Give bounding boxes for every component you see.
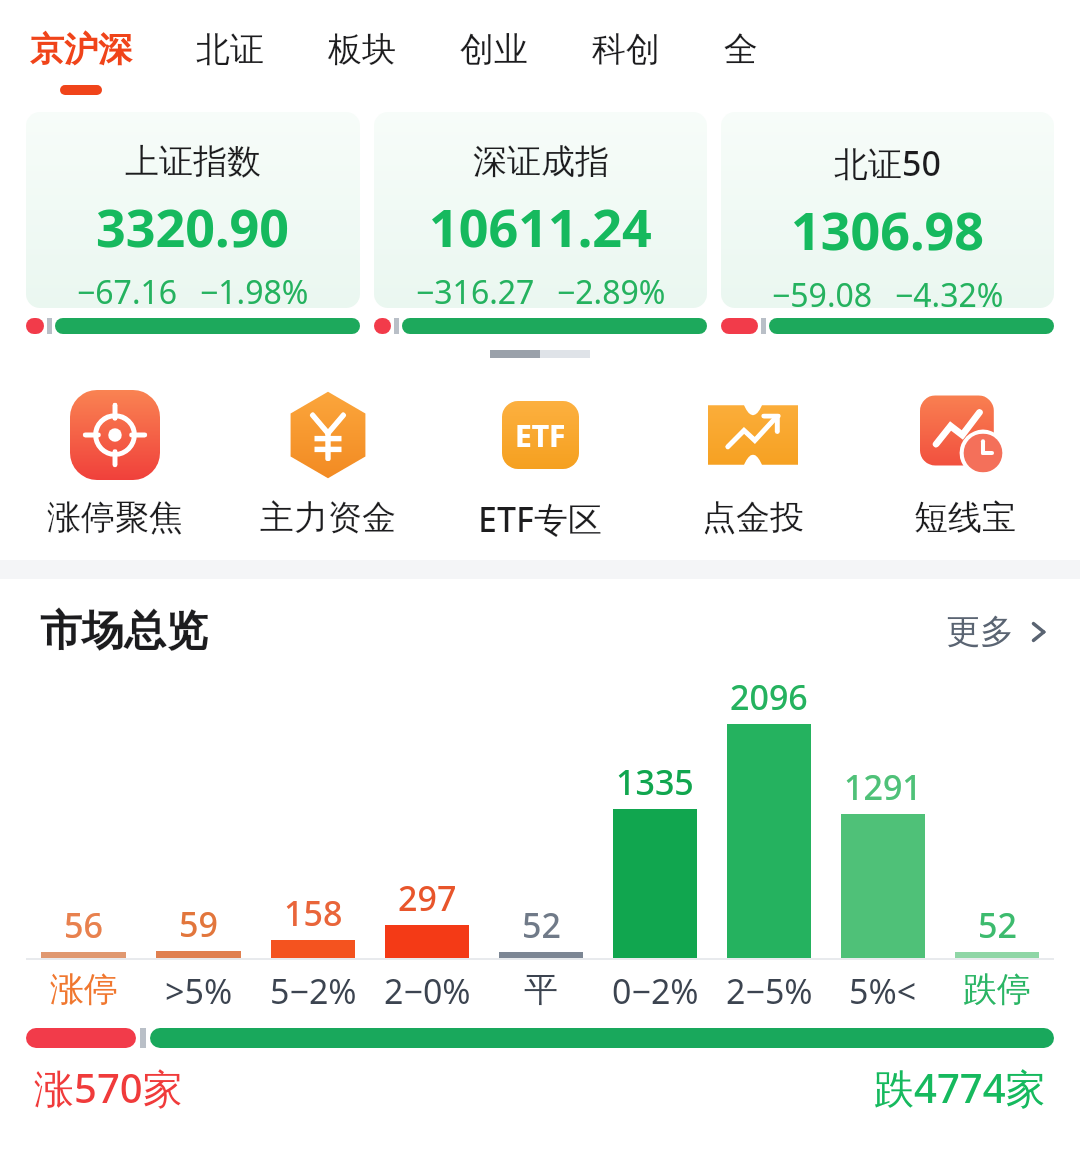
other: 涨停聚焦 (70, 390, 160, 480)
button[interactable]: 深证成指 (374, 112, 707, 334)
staticText: 2−0% (384, 968, 471, 1014)
staticText: 5%< (849, 968, 917, 1014)
staticText: 市场总览 (40, 605, 208, 658)
other: ETF专区 (495, 390, 585, 480)
staticText: 深证成指 (473, 140, 609, 183)
staticText: 0−2% (612, 968, 699, 1014)
button[interactable]: 主力资金 (233, 390, 423, 539)
button[interactable]: 全 (724, 28, 758, 71)
staticText: 297 (398, 875, 457, 921)
other: 主力资金 (283, 390, 373, 480)
button[interactable]: 京沪深 (30, 28, 132, 95)
button[interactable]: 板块 (328, 28, 396, 71)
button[interactable]: 2096 (712, 674, 826, 958)
staticText: −4.32% (895, 273, 1004, 308)
staticText: 科创 (592, 28, 660, 71)
button[interactable]: 52 (940, 902, 1054, 958)
button[interactable]: 短线宝 (870, 390, 1060, 539)
button[interactable]: 上证指数 (26, 112, 360, 334)
button[interactable]: 1335 (598, 759, 712, 958)
button[interactable]: 创业 (460, 28, 528, 71)
staticText: 2096 (730, 674, 808, 720)
staticText: 京沪深 (30, 28, 132, 71)
button[interactable]: 1291 (826, 764, 940, 958)
staticText: 跌4774家 (874, 1060, 1046, 1115)
staticText: 2−5% (726, 968, 813, 1014)
button[interactable]: ETF专区 (445, 390, 635, 542)
button[interactable]: 更多 (946, 610, 1050, 653)
staticText: 全 (724, 28, 758, 71)
staticText: >5% (165, 968, 233, 1014)
staticText: 北证50 (834, 140, 941, 186)
staticText: 56 (64, 902, 103, 948)
button[interactable]: 158 (256, 890, 370, 958)
staticText: 更多 (946, 610, 1014, 653)
staticText: 59 (179, 901, 218, 947)
staticText: −2.89% (557, 270, 666, 308)
staticText: −316.27 (416, 270, 535, 308)
staticText: 主力资金 (260, 496, 396, 539)
staticText: 1335 (616, 759, 694, 805)
staticText: 创业 (460, 28, 528, 71)
staticText: 1291 (844, 764, 922, 810)
other: 短线宝 (920, 390, 1010, 480)
staticText: 上证指数 (125, 140, 261, 183)
staticText: 板块 (328, 28, 396, 71)
staticText: 涨停 (50, 968, 118, 1011)
staticText: 点金投 (702, 496, 804, 539)
staticText: −59.08 (772, 273, 873, 308)
button[interactable]: 56 (26, 902, 141, 958)
staticText: 10611.24 (429, 191, 652, 262)
button[interactable]: 59 (141, 901, 256, 958)
staticText: 涨停聚焦 (47, 496, 183, 539)
staticText: 1306.98 (791, 194, 985, 265)
staticText: 3320.90 (96, 191, 290, 262)
staticText: 158 (284, 890, 343, 936)
button[interactable]: 点金投 (658, 390, 848, 539)
button[interactable]: 52 (484, 902, 598, 958)
button[interactable]: 297 (370, 875, 484, 958)
other: 点金投 (708, 390, 798, 480)
staticText: −1.98% (200, 270, 309, 308)
staticText: 平 (524, 968, 558, 1011)
button[interactable]: 涨停聚焦 (20, 390, 210, 539)
button[interactable]: 北证 (196, 28, 264, 71)
staticText: −67.16 (77, 270, 178, 308)
staticText: ETF (515, 415, 566, 456)
staticText: 涨570家 (34, 1060, 183, 1115)
staticText: 跌停 (963, 968, 1031, 1011)
staticText: 5−2% (270, 968, 357, 1014)
staticText: 北证 (196, 28, 264, 71)
staticText: 短线宝 (914, 496, 1016, 539)
staticText: ETF专区 (478, 496, 602, 542)
staticText: 52 (978, 902, 1017, 948)
button[interactable]: 科创 (592, 28, 660, 71)
staticText: 52 (522, 902, 561, 948)
button[interactable]: 北证50 (721, 112, 1054, 334)
